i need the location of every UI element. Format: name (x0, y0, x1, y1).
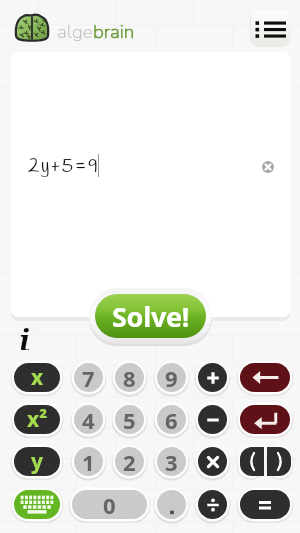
button[interactable]: y (14, 447, 60, 476)
staticText: brain (93, 19, 135, 45)
button[interactable]: Menu (251, 10, 290, 46)
button[interactable]: 8 (115, 363, 144, 392)
staticText: 8 (123, 363, 136, 392)
button[interactable] (157, 490, 186, 519)
button[interactable]: Clear (256, 155, 280, 179)
button[interactable]: Multiply (198, 447, 227, 476)
button[interactable]: Info (13, 320, 35, 350)
staticText: y (31, 447, 43, 476)
button[interactable]: Plus (198, 363, 227, 392)
button[interactable]: 5 (115, 405, 144, 434)
button[interactable]: x² (14, 405, 60, 434)
button[interactable]: 0 (72, 490, 147, 519)
staticText: alge (57, 19, 93, 45)
button[interactable]: x (14, 363, 60, 392)
button[interactable]: 6 (157, 405, 186, 434)
button[interactable]: Keyboard (14, 490, 60, 519)
staticText: 5 (123, 405, 136, 434)
staticText: 1 (82, 447, 95, 476)
button[interactable]: Open parenthesis (240, 447, 264, 476)
button[interactable]: 3 (157, 447, 186, 476)
staticText: 3 (165, 447, 178, 476)
button[interactable]: 4 (74, 405, 103, 434)
button[interactable]: Minus (198, 405, 227, 434)
staticText: 0 (103, 490, 116, 519)
staticText: 7 (82, 363, 95, 392)
button[interactable]: 1 (74, 447, 103, 476)
button[interactable]: 7 (74, 363, 103, 392)
button[interactable]: 2 (115, 447, 144, 476)
staticText: 6 (165, 405, 178, 434)
staticText: x² (27, 405, 48, 434)
staticText: 9 (165, 363, 178, 392)
staticText: 4 (82, 405, 95, 434)
button[interactable]: Solve! (95, 294, 206, 338)
staticText: x (31, 363, 44, 392)
button[interactable]: Equals (240, 490, 290, 519)
button[interactable]: Divide (198, 490, 227, 519)
button[interactable]: Close parenthesis (267, 447, 291, 476)
staticText: Solve! (112, 298, 190, 335)
button[interactable]: 9 (157, 363, 186, 392)
staticText: 2y+5=9 (28, 153, 100, 180)
button[interactable]: Backspace (240, 363, 290, 392)
button[interactable]: Enter (240, 405, 290, 434)
staticText: i (19, 320, 30, 350)
staticText: 2 (123, 447, 136, 476)
